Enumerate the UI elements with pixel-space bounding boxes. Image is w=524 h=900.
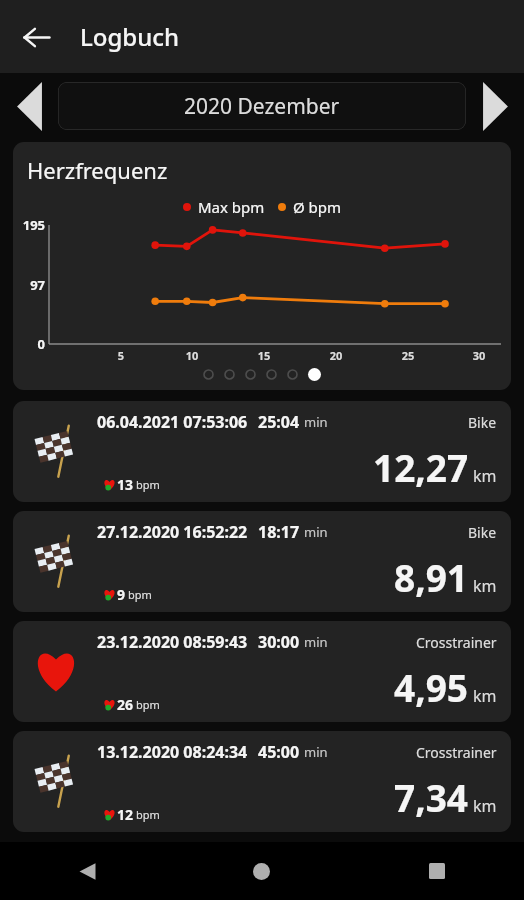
- button[interactable]: 27.12.2020 16:52:22: [13, 511, 511, 612]
- staticText: 195: [14, 216, 45, 234]
- staticText: 13: [117, 475, 134, 494]
- staticText: km: [473, 795, 497, 817]
- staticText: 27.12.2020 16:52:22: [97, 521, 248, 543]
- button[interactable]: Back: [13, 14, 59, 60]
- staticText: 97: [14, 276, 45, 294]
- staticText: 26: [117, 695, 134, 714]
- button[interactable]: Back: [0, 842, 174, 900]
- staticText: 2020 Dezember: [184, 92, 340, 121]
- button[interactable]: 23.12.2020 08:59:43: [13, 621, 511, 722]
- staticText: 8,91: [394, 552, 469, 602]
- staticText: 12: [117, 805, 134, 824]
- staticText: 25:04: [258, 411, 300, 433]
- staticText: 10: [180, 348, 204, 363]
- staticText: 0: [14, 335, 45, 353]
- staticText: min: [304, 413, 328, 431]
- button[interactable]: Next month: [466, 75, 524, 137]
- staticText: 23.12.2020 08:59:43: [97, 631, 248, 653]
- staticText: min: [304, 743, 328, 761]
- staticText: 15: [252, 348, 276, 363]
- button[interactable]: 2020 Dezember: [58, 82, 466, 130]
- staticText: km: [473, 575, 497, 597]
- staticText: 4,95: [394, 662, 469, 712]
- staticText: bpm: [136, 807, 160, 822]
- staticText: 13.12.2020 08:24:34: [97, 741, 248, 763]
- staticText: 12,27: [373, 442, 469, 492]
- staticText: Crosstrainer: [416, 633, 497, 652]
- staticText: 9: [117, 585, 126, 604]
- staticText: bpm: [136, 477, 160, 492]
- button[interactable]: Previous month: [0, 75, 58, 137]
- staticText: 25: [396, 348, 420, 363]
- staticText: Ø bpm: [293, 197, 342, 217]
- button[interactable]: 13.12.2020 08:24:34: [13, 731, 511, 832]
- staticText: 7,34: [394, 772, 469, 822]
- staticText: Bike: [468, 413, 497, 432]
- staticText: Logbuch: [80, 20, 180, 53]
- button[interactable]: Herzfrequenz: [13, 142, 511, 390]
- staticText: min: [304, 633, 328, 651]
- staticText: 18:17: [258, 521, 300, 543]
- staticText: Bike: [468, 523, 497, 542]
- staticText: 30: [467, 348, 491, 363]
- staticText: Max bpm: [198, 197, 265, 217]
- staticText: 30:00: [258, 631, 300, 653]
- staticText: km: [473, 465, 497, 487]
- staticText: km: [473, 685, 497, 707]
- staticText: bpm: [128, 587, 152, 602]
- button[interactable]: Home: [174, 842, 349, 900]
- button[interactable]: Recent apps: [349, 842, 524, 900]
- staticText: 20: [324, 348, 348, 363]
- staticText: bpm: [136, 697, 160, 712]
- staticText: min: [304, 523, 328, 541]
- button[interactable]: 06.04.2021 07:53:06: [13, 401, 511, 502]
- staticText: Herzfrequenz: [27, 155, 168, 185]
- staticText: 45:00: [258, 741, 300, 763]
- staticText: Crosstrainer: [416, 743, 497, 762]
- staticText: 5: [109, 348, 133, 363]
- staticText: 06.04.2021 07:53:06: [97, 411, 248, 433]
